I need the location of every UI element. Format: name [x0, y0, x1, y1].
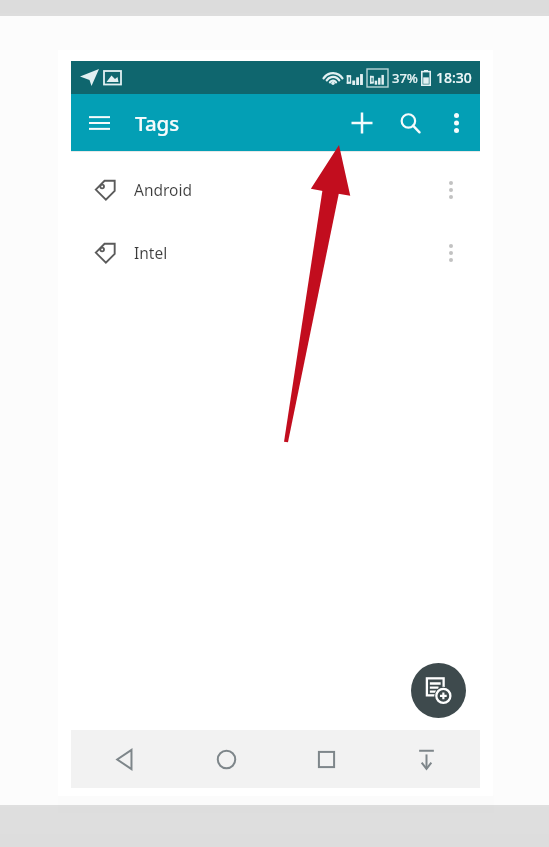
button[interactable]: Android: [71, 158, 480, 221]
staticText: Tags: [135, 109, 180, 137]
staticText: Android: [134, 179, 193, 200]
button[interactable]: Recent apps: [300, 733, 352, 785]
button[interactable]: Open navigation drawer: [76, 100, 122, 146]
button[interactable]: More options: [434, 101, 478, 145]
staticText: 18:30: [436, 68, 472, 87]
button[interactable]: Intel: [71, 221, 480, 284]
staticText: 37%: [392, 69, 418, 87]
button[interactable]: Add tag: [338, 99, 386, 147]
button[interactable]: Search: [386, 99, 434, 147]
staticText: Intel: [134, 242, 168, 263]
button[interactable]: Home: [200, 733, 252, 785]
button[interactable]: Tag options: [430, 169, 472, 211]
button[interactable]: Add note: [411, 663, 466, 718]
button[interactable]: Back: [99, 733, 151, 785]
button[interactable]: Hide keyboard: [400, 733, 452, 785]
button[interactable]: Tag options: [430, 232, 472, 274]
